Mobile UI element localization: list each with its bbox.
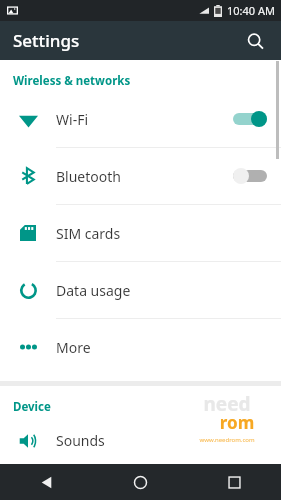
staticText: Device [13,399,51,415]
button[interactable]: SIM cards [0,205,281,261]
staticText: Wireless & networks [13,73,131,89]
button[interactable]: Back [0,464,93,500]
button[interactable]: On [233,111,267,127]
button[interactable]: Sounds [0,417,281,464]
staticText: Settings [13,29,80,52]
button[interactable]: Recent apps [187,464,281,500]
staticText: 10:40 AM [227,3,275,18]
button[interactable]: Off [233,168,267,184]
staticText: Bluetooth [56,167,233,186]
staticText: Data usage [56,281,281,300]
button[interactable]: Search [239,25,271,57]
staticText: More [56,338,281,357]
staticText: www.needrom.com [181,436,273,444]
staticText: SIM cards [56,224,281,243]
staticText: Wi-Fi [56,110,233,129]
button[interactable]: Wi-Fi [0,91,281,147]
button[interactable]: Bluetooth [0,148,281,204]
staticText: need [181,391,273,417]
button[interactable]: More [0,319,281,375]
staticText: rom [191,411,281,434]
button[interactable]: Home [93,464,187,500]
staticText: Sounds [56,431,281,450]
button[interactable]: Data usage [0,262,281,318]
